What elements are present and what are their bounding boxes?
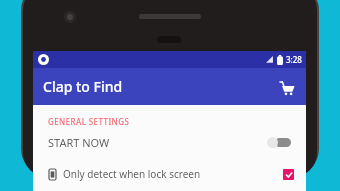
staticText: 3:28 xyxy=(286,54,302,65)
button[interactable]: START NOW xyxy=(33,131,306,153)
staticText: START NOW xyxy=(48,135,110,150)
button[interactable]: Shop xyxy=(274,74,300,100)
staticText: Clap to Find xyxy=(43,77,123,96)
staticText: Only detect when lock screen xyxy=(63,167,201,181)
button[interactable]: Only detect when lock screen xyxy=(33,162,306,186)
staticText: GENERAL SETTINGS xyxy=(48,116,130,127)
